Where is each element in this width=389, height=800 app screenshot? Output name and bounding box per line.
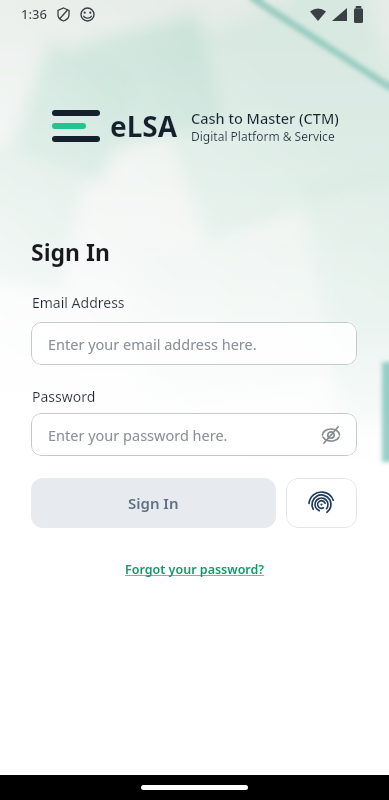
button[interactable]: Sign In [31,478,276,528]
staticText: Enter your password here. [48,425,228,445]
staticText: 1:36 [21,5,47,23]
staticText: Sign In [31,236,110,267]
staticText: Password [32,387,96,406]
button[interactable] [286,478,357,528]
button[interactable]: Enter your email address here. [31,322,357,365]
staticText: eLSA [110,107,178,145]
staticText: Enter your email address here. [48,334,257,354]
button[interactable]: Enter your password here. [31,413,357,456]
staticText: Sign In [128,493,179,513]
button[interactable]: Forgot your password? [125,561,265,578]
staticText: Cash to Master (CTM) [191,108,339,128]
staticText: Digital Platform & Service [191,128,335,144]
button[interactable] [0,775,389,800]
staticText: Email Address [32,293,125,312]
